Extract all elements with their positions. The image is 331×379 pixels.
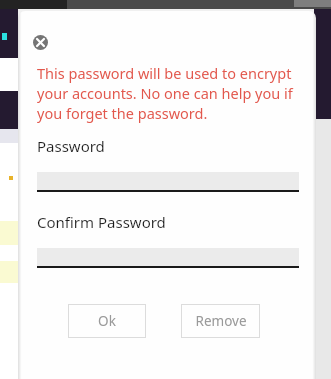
button[interactable] bbox=[37, 248, 299, 268]
button[interactable] bbox=[37, 172, 299, 192]
staticText: Remove bbox=[195, 312, 247, 330]
staticText: Ok bbox=[98, 312, 116, 330]
button[interactable]: Close bbox=[25, 27, 55, 57]
staticText: This password will be used to encrypt yo… bbox=[37, 63, 306, 123]
button[interactable]: Remove bbox=[181, 304, 260, 338]
staticText: Password bbox=[37, 136, 105, 156]
button[interactable]: Ok bbox=[68, 304, 146, 338]
staticText: Confirm Password bbox=[37, 212, 166, 232]
